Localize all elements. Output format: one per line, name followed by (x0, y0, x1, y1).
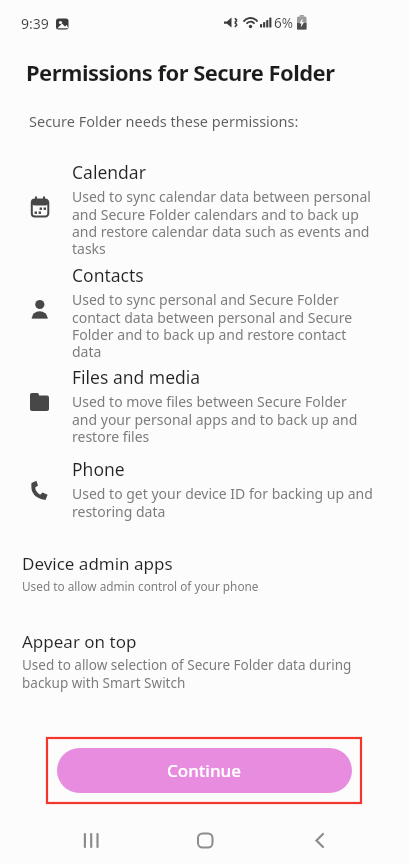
staticText: Phone (72, 457, 125, 481)
button[interactable] (51, 815, 131, 864)
button[interactable] (165, 815, 245, 864)
staticText: Continue (167, 759, 242, 782)
staticText: Device admin apps (22, 552, 173, 575)
staticText: 9:39 (21, 14, 49, 33)
staticText: Used to get your device ID for backing u… (72, 484, 373, 521)
button[interactable]: Continue (57, 748, 352, 793)
staticText: Calendar (72, 160, 146, 184)
staticText: Used to sync calendar data between perso… (72, 187, 371, 258)
staticText: Permissions for Secure Folder (26, 57, 335, 87)
staticText: Files and media (72, 365, 201, 389)
staticText: Used to move files between Secure Folder… (72, 392, 358, 446)
staticText: Used to sync personal and Secure Folder … (72, 290, 353, 361)
staticText: Appear on top (22, 630, 137, 653)
staticText: Contacts (72, 263, 144, 287)
staticText: Used to allow admin control of your phon… (22, 578, 259, 594)
staticText: Secure Folder needs these permissions: (29, 111, 299, 131)
staticText: Used to allow selection of Secure Folder… (22, 656, 352, 692)
button[interactable] (280, 815, 360, 864)
staticText: 6% (274, 14, 293, 32)
